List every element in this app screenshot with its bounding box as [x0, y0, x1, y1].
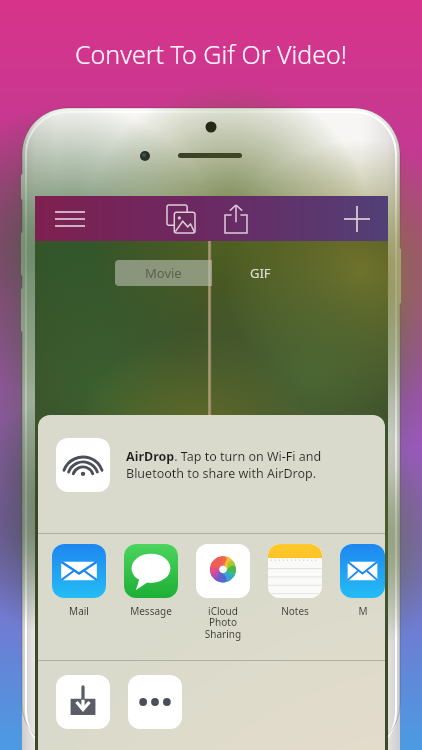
staticText: Movie	[145, 264, 182, 282]
button[interactable]: Photos	[158, 196, 204, 241]
button[interactable]: M	[340, 544, 385, 618]
button[interactable]: GIF	[212, 260, 309, 286]
staticText: Convert To Gif Or Video!	[75, 37, 347, 71]
button[interactable]: iCloud Photo Sharing	[196, 544, 250, 641]
staticText: Notes	[281, 604, 309, 618]
button[interactable]: Message	[124, 544, 178, 618]
staticText: Message	[130, 604, 172, 618]
button[interactable]: Add	[333, 196, 381, 241]
staticText: GIF	[250, 264, 271, 282]
button[interactable]: Notes	[268, 544, 322, 618]
button[interactable]: Share	[213, 196, 259, 241]
button[interactable]: Menu	[43, 196, 97, 241]
staticText: Mail	[69, 604, 89, 618]
staticText: AirDrop. Tap to turn on Wi-Fi and Blueto…	[126, 448, 371, 482]
button[interactable]: AirDrop. Tap to turn on Wi-Fi and Blueto…	[38, 415, 385, 515]
button[interactable]: More	[128, 675, 182, 729]
button[interactable]: Mail	[52, 544, 106, 618]
staticText: iCloud Photo Sharing	[196, 604, 250, 641]
staticText: M	[358, 604, 368, 618]
button[interactable]: Save Image	[56, 675, 110, 729]
button[interactable]: Movie	[115, 260, 212, 286]
